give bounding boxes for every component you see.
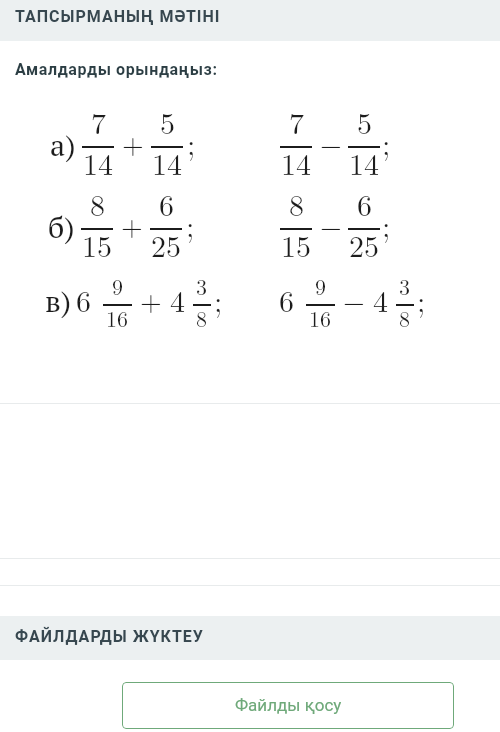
button[interactable]: Файлды қосу — [122, 682, 454, 729]
staticText: 9 — [112, 270, 124, 301]
staticText: 8 — [399, 302, 411, 333]
staticText: ; — [382, 121, 391, 164]
staticText: 7 — [91, 100, 106, 143]
staticText: 14 — [349, 141, 379, 184]
staticText: 4 — [170, 278, 185, 321]
button[interactable]: ТАПСЫРМАНЫҢ МӘТІНІ — [0, 0, 500, 41]
staticText: 16 — [106, 302, 129, 333]
staticText: − — [343, 279, 365, 319]
staticText: 8 — [90, 182, 105, 225]
staticText: 14 — [281, 141, 311, 184]
staticText: 6 — [159, 182, 174, 225]
staticText: 8 — [196, 302, 208, 333]
staticText: a) — [50, 125, 76, 165]
staticText: ; — [214, 278, 223, 321]
staticText: Амалдарды орындаңыз: — [15, 60, 218, 79]
staticText: 25 — [151, 223, 181, 266]
staticText: ; — [417, 278, 426, 321]
staticText: б) — [48, 207, 75, 247]
staticText: + — [121, 204, 143, 244]
staticText: 5 — [357, 100, 372, 143]
staticText: 5 — [160, 100, 175, 143]
staticText: 9 — [315, 270, 327, 301]
staticText: 6 — [279, 278, 294, 321]
button[interactable]: ФАЙЛДАРДЫ ЖҮКТЕУ — [0, 616, 500, 660]
staticText: 3 — [196, 270, 208, 301]
staticText: − — [320, 122, 342, 162]
staticText: ТАПСЫРМАНЫҢ МӘТІНІ — [15, 7, 221, 26]
staticText: 8 — [289, 182, 304, 225]
staticText: 6 — [76, 278, 91, 321]
staticText: 4 — [373, 278, 388, 321]
staticText: 16 — [309, 302, 332, 333]
staticText: − — [320, 204, 342, 244]
staticText: 7 — [289, 100, 304, 143]
staticText: ; — [186, 203, 195, 246]
staticText: 14 — [152, 141, 182, 184]
staticText: ; — [187, 121, 196, 164]
staticText: 15 — [82, 223, 112, 266]
staticText: Файлды қосу — [235, 695, 342, 715]
staticText: + — [122, 122, 144, 162]
staticText: 25 — [349, 223, 379, 266]
staticText: 3 — [399, 270, 411, 301]
staticText: ; — [382, 203, 391, 246]
staticText: + — [140, 279, 162, 319]
staticText: ФАЙЛДАРДЫ ЖҮКТЕУ — [15, 627, 204, 646]
staticText: 6 — [357, 182, 372, 225]
staticText: 15 — [281, 223, 311, 266]
staticText: 14 — [83, 141, 113, 184]
staticText: в) — [45, 281, 72, 321]
